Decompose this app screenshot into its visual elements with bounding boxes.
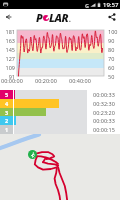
staticText: . [69, 16, 71, 24]
staticText: 00:20:00 [35, 77, 57, 84]
staticText: LAR [49, 10, 69, 25]
staticText: 00:40:00 [69, 77, 91, 84]
staticText: 00:00:33 [93, 117, 115, 124]
staticText: 50 [108, 73, 115, 80]
button[interactable]: 4 [0, 99, 120, 108]
button[interactable]: Share [104, 9, 120, 25]
staticText: 00:00:15 [93, 126, 115, 133]
button[interactable]: 5 [0, 90, 120, 99]
staticText: 145 [0, 46, 15, 53]
staticText: 3 [5, 109, 9, 116]
button[interactable]: Back [0, 9, 16, 25]
button[interactable]: 1 [0, 125, 120, 134]
staticText: 109 [0, 64, 15, 71]
staticText: G [85, 2, 89, 9]
staticText: 163 [0, 37, 15, 44]
staticText: 127 [0, 55, 15, 62]
staticText: 100 [108, 28, 118, 35]
button[interactable]: 3 [0, 108, 120, 117]
staticText: 00:23:20 [93, 109, 115, 116]
staticText: 5 [5, 91, 9, 98]
staticText: 00:32:30 [93, 100, 115, 107]
staticText: 00:00:33 [93, 91, 115, 98]
staticText: 80 [108, 46, 115, 53]
staticText: 181 [0, 28, 15, 35]
staticText: 4 [5, 100, 9, 107]
staticText: 00:00:00 [1, 77, 23, 84]
staticText: 70 [108, 55, 115, 62]
staticText: P [36, 10, 43, 25]
staticText: 19:57 [103, 1, 119, 9]
button[interactable]: 2 [0, 116, 120, 125]
staticText: 60 [108, 64, 115, 71]
staticText: 91 [0, 73, 15, 80]
staticText: 2 [5, 117, 9, 124]
staticText: 1 [5, 126, 9, 133]
staticText: 90 [108, 37, 115, 44]
